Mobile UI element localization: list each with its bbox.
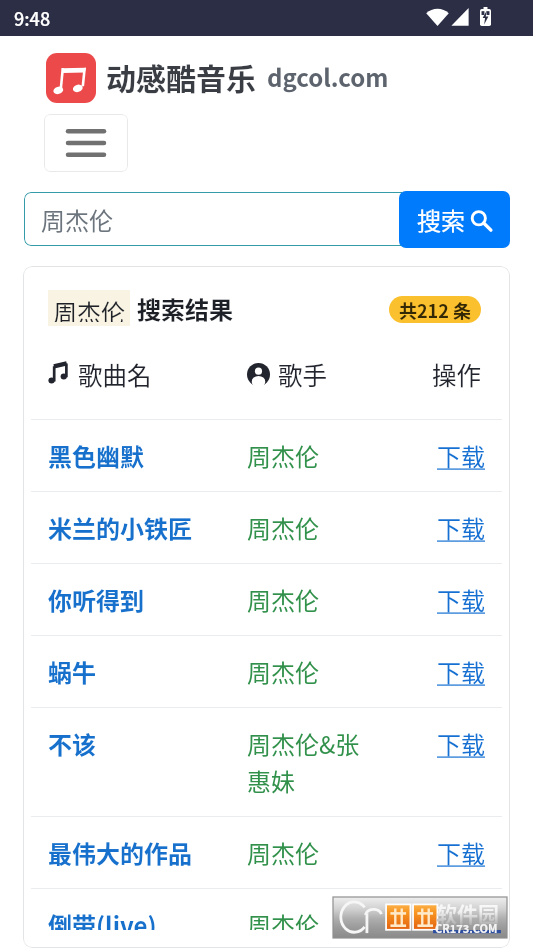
staticText: 蜗牛	[48, 654, 247, 689]
staticText: 黑色幽默	[48, 438, 247, 473]
staticText: 下载	[437, 726, 485, 761]
button[interactable]: 不该	[23, 708, 510, 816]
staticText: 周杰伦	[247, 582, 427, 617]
staticText: 周杰伦	[53, 294, 125, 322]
staticText: 歌曲名	[78, 357, 152, 392]
staticText: 周杰伦	[247, 510, 427, 545]
staticText: 动感酷音乐	[106, 55, 256, 98]
button[interactable]: 黑色幽默	[23, 420, 510, 491]
staticText: 最伟大的作品	[48, 835, 247, 870]
staticText: 周杰伦	[247, 835, 427, 870]
staticText: 下载	[437, 510, 485, 545]
staticText: 搜索	[417, 202, 465, 237]
button[interactable]: 米兰的小铁匠	[23, 492, 510, 563]
button[interactable]: 共212 条	[389, 296, 481, 323]
staticText: CR173.COM	[435, 920, 498, 936]
staticText: dgcol.com	[267, 59, 389, 94]
button[interactable]: 蜗牛	[23, 636, 510, 707]
staticText: 下载	[437, 582, 485, 617]
staticText: 周杰伦	[247, 438, 427, 473]
staticText: 9:48	[14, 5, 51, 31]
staticText: 搜索结果	[137, 291, 233, 326]
button[interactable]: 周杰伦	[24, 192, 402, 246]
staticText: 周杰伦&张惠妹	[247, 726, 365, 798]
staticText: 软件园	[436, 898, 499, 928]
staticText: 下载	[437, 907, 485, 930]
staticText: 你听得到	[48, 582, 247, 617]
staticText: 周杰伦	[247, 907, 427, 930]
staticText: 共212 条	[399, 297, 471, 323]
staticText: 下载	[437, 438, 485, 473]
staticText: 倒带(live)	[48, 907, 247, 930]
staticText: 周杰伦	[41, 202, 113, 237]
staticText: 下载	[437, 835, 485, 870]
staticText: 操作	[432, 357, 481, 392]
button[interactable]: 倒带(live)	[23, 889, 510, 948]
button[interactable]: Menu	[44, 114, 128, 172]
staticText: 歌手	[278, 357, 327, 392]
staticText: 周杰伦	[247, 654, 427, 689]
staticText: 米兰的小铁匠	[48, 510, 247, 545]
button[interactable]: Music logo	[46, 53, 96, 103]
staticText: 下载	[437, 654, 485, 689]
staticText: 不该	[48, 726, 247, 761]
button[interactable]: 搜索	[399, 191, 510, 248]
button[interactable]: 你听得到	[23, 564, 510, 635]
button[interactable]: 最伟大的作品	[23, 817, 510, 888]
